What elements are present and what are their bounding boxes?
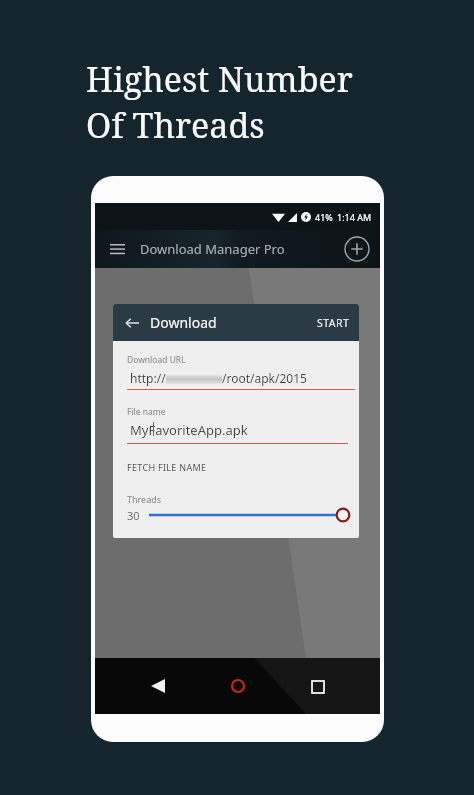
button[interactable]: Add download [344,236,370,262]
staticText: Download Manager Pro [140,240,285,258]
staticText: Highest Number [86,56,353,102]
staticText: File name [127,406,166,418]
button[interactable]: Home [198,666,278,706]
button[interactable]: START [308,308,359,338]
staticText: Download URL [127,354,186,366]
staticText: FETCH FILE NAME [127,461,207,473]
staticText: 41% [315,211,333,223]
staticText: http:// [130,370,166,386]
staticText: 30 [127,508,140,523]
staticText: Threads [127,493,162,505]
staticText: MyFavoriteApp.apk [130,421,248,439]
staticText: 1:14 AM [337,211,372,223]
button[interactable]: Back [117,666,198,706]
staticText: Of Threads [86,102,265,148]
button[interactable]: FETCH FILE NAME [121,457,213,477]
staticText: START [317,316,350,330]
button[interactable] [149,505,352,525]
staticText: /root/apk/2015 [222,370,307,386]
button[interactable]: Back [118,309,146,337]
staticText: Download [150,313,217,332]
button[interactable]: Recent apps [278,666,358,706]
button[interactable]: Open navigation menu [102,234,132,264]
